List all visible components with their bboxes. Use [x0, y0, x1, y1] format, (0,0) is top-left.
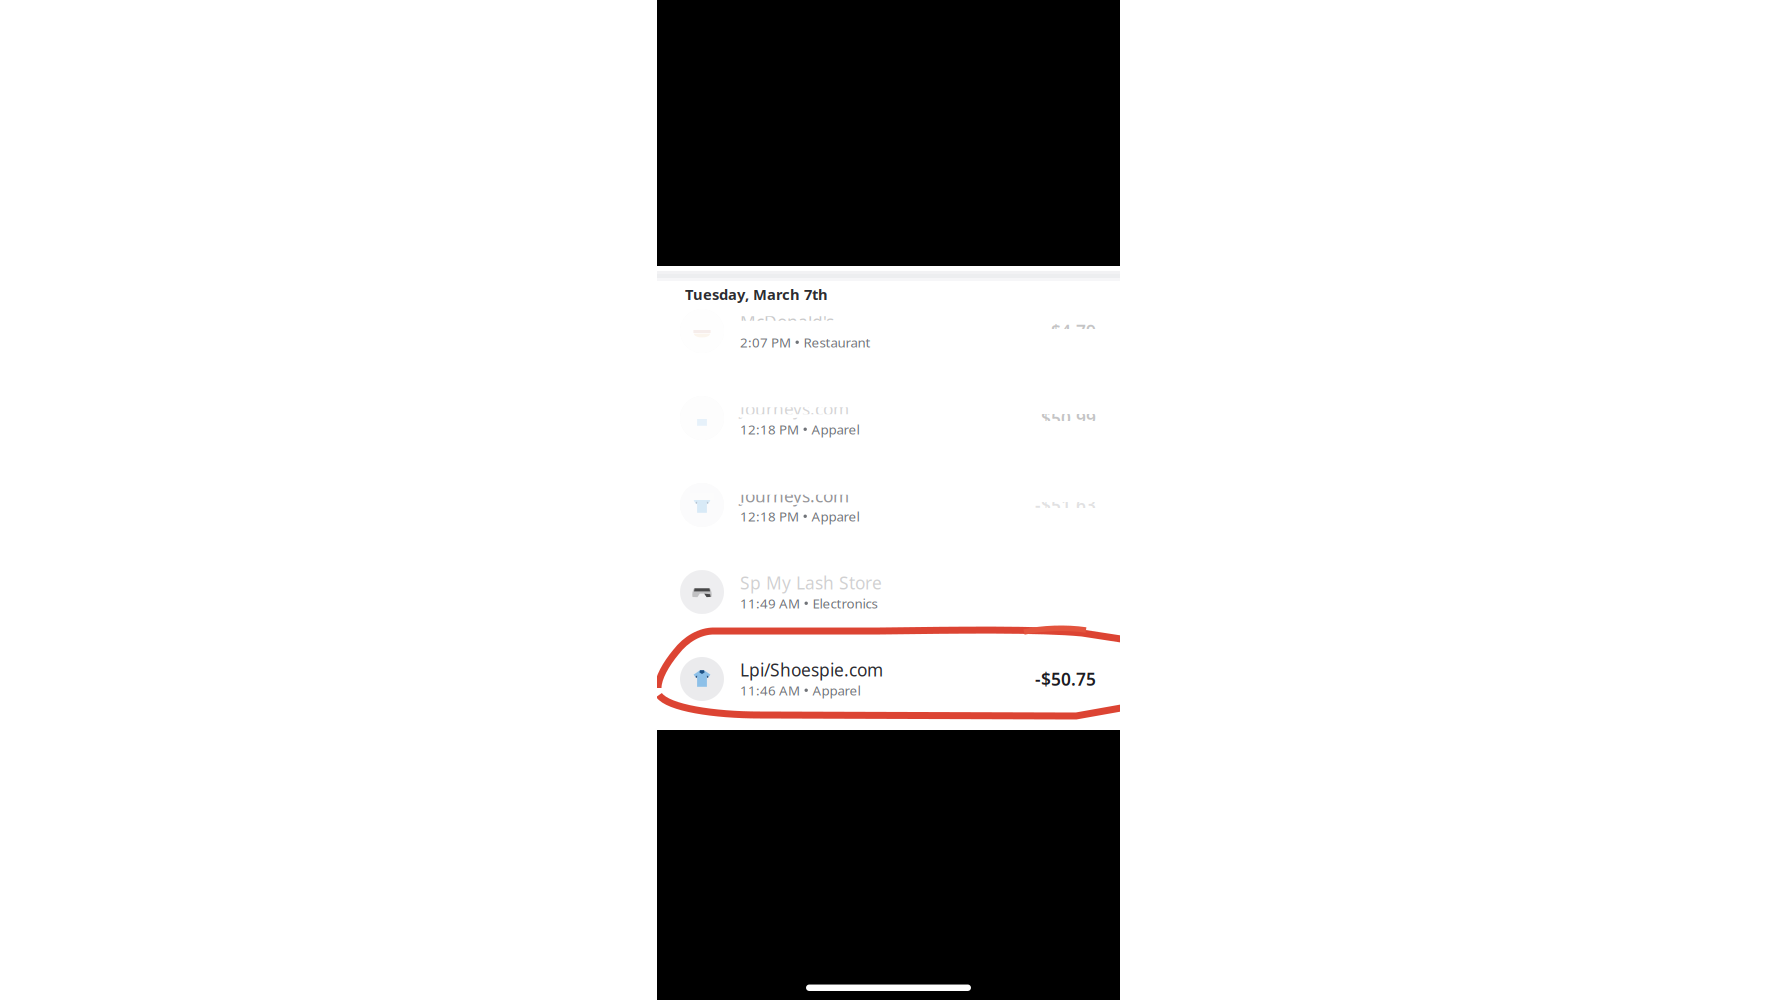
staticText: Apparel: [812, 681, 860, 699]
staticText: -$4.79: [1045, 319, 1096, 342]
staticText: 2:07 PM: [740, 333, 791, 351]
staticText: Electronics: [812, 594, 877, 612]
staticText: Sp My Lash Store: [740, 571, 882, 594]
staticText: Lpi/Shoespie.com: [740, 658, 883, 681]
staticText: 11:49 AM: [740, 594, 800, 612]
staticText: Journeys.com: [740, 397, 849, 420]
staticText: 11:46 AM: [740, 681, 800, 699]
staticText: Journeys.com: [740, 484, 849, 507]
button[interactable]: Lpi/Shoespie.com: [657, 635, 1120, 722]
staticText: Restaurant: [803, 333, 870, 351]
staticText: $50.99: [1041, 406, 1096, 429]
staticText: Tuesday, March 7th: [685, 284, 828, 304]
button[interactable]: Journeys.com: [657, 374, 1120, 461]
staticText: 12:18 PM: [740, 507, 799, 525]
staticText: 12:18 PM: [740, 420, 799, 438]
staticText: McDonald's: [740, 310, 834, 333]
staticText: Apparel: [811, 420, 859, 438]
button[interactable]: Journeys.com: [657, 461, 1120, 548]
staticText: -$51.63: [1035, 493, 1096, 516]
button[interactable]: Sp My Lash Store: [657, 548, 1120, 635]
button[interactable]: McDonald's: [657, 287, 1120, 374]
staticText: -$50.75: [1035, 667, 1096, 690]
staticText: Apparel: [811, 507, 859, 525]
